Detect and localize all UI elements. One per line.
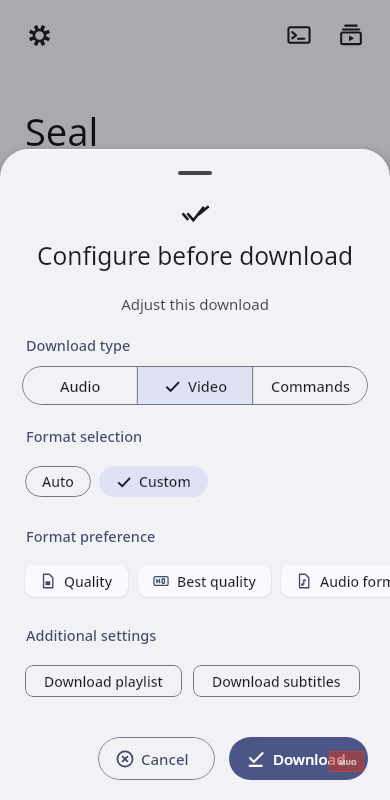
button[interactable]: Downloads <box>330 14 372 56</box>
button[interactable]: Audio format <box>281 565 390 597</box>
button[interactable]: Download playlist <box>25 665 182 697</box>
staticText: Format selection <box>26 426 143 446</box>
button[interactable]: Audio <box>22 366 138 405</box>
staticText: Seal <box>25 105 99 157</box>
button[interactable]: Cancel <box>98 737 215 780</box>
staticText: Custom <box>139 472 191 491</box>
staticText: Auto <box>42 472 74 491</box>
staticText: Format preference <box>26 526 156 546</box>
staticText: Best quality <box>177 572 256 591</box>
button[interactable]: Best quality <box>138 565 271 597</box>
staticText: Download type <box>26 335 131 355</box>
staticText: Download <box>273 749 346 769</box>
staticText: Additional settings <box>26 625 157 645</box>
staticText: Quality <box>64 572 113 591</box>
staticText: Cancel <box>141 749 189 769</box>
staticText: Download playlist <box>44 672 163 691</box>
button[interactable]: Download subtitles <box>193 665 360 697</box>
staticText: Adjust this download <box>0 294 390 314</box>
button[interactable]: Video <box>138 366 253 405</box>
staticText: Configure before download <box>0 239 390 272</box>
staticText: Audio <box>60 376 101 396</box>
button[interactable]: Custom <box>99 466 208 497</box>
button[interactable]: Console <box>278 14 320 56</box>
button[interactable]: Quality <box>25 565 128 597</box>
staticText: MUO <box>339 758 357 768</box>
button[interactable]: Commands <box>253 366 368 405</box>
button[interactable]: Auto <box>25 466 91 497</box>
button[interactable]: Download <box>229 737 368 780</box>
staticText: Download subtitles <box>212 672 341 691</box>
staticText: Commands <box>271 376 350 396</box>
staticText: Video <box>188 376 228 396</box>
button[interactable]: Settings <box>18 14 60 56</box>
staticText: Audio format <box>320 572 390 591</box>
